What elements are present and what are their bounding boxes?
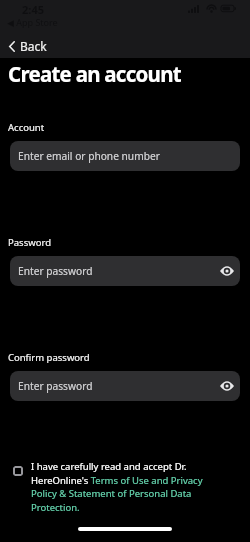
- staticText: I have carefully read and accept Dr.: [31, 460, 187, 473]
- staticText: Enter password: [18, 264, 93, 278]
- staticText: Back: [20, 38, 47, 54]
- staticText: Password: [8, 236, 51, 249]
- staticText: Enter password: [18, 379, 93, 393]
- button[interactable]: [220, 265, 234, 277]
- staticText: Policy & Statement of Personal Data: [31, 487, 192, 500]
- button[interactable]: [220, 380, 234, 392]
- staticText: Create an account: [8, 60, 181, 88]
- button[interactable]: Enter email or phone number: [10, 141, 240, 171]
- staticText: Account: [8, 121, 45, 134]
- staticText: Protection.: [31, 501, 80, 514]
- staticText: Enter email or phone number: [18, 149, 160, 163]
- button[interactable]: Enter password: [10, 256, 240, 286]
- staticText: Confirm password: [8, 351, 90, 364]
- button[interactable]: [13, 466, 23, 476]
- staticText: HereOnline's Terms of Use and Privacy: [31, 474, 203, 487]
- button[interactable]: Back: [6, 36, 49, 56]
- staticText: 2:45: [22, 2, 44, 17]
- button[interactable]: Enter password: [10, 371, 240, 401]
